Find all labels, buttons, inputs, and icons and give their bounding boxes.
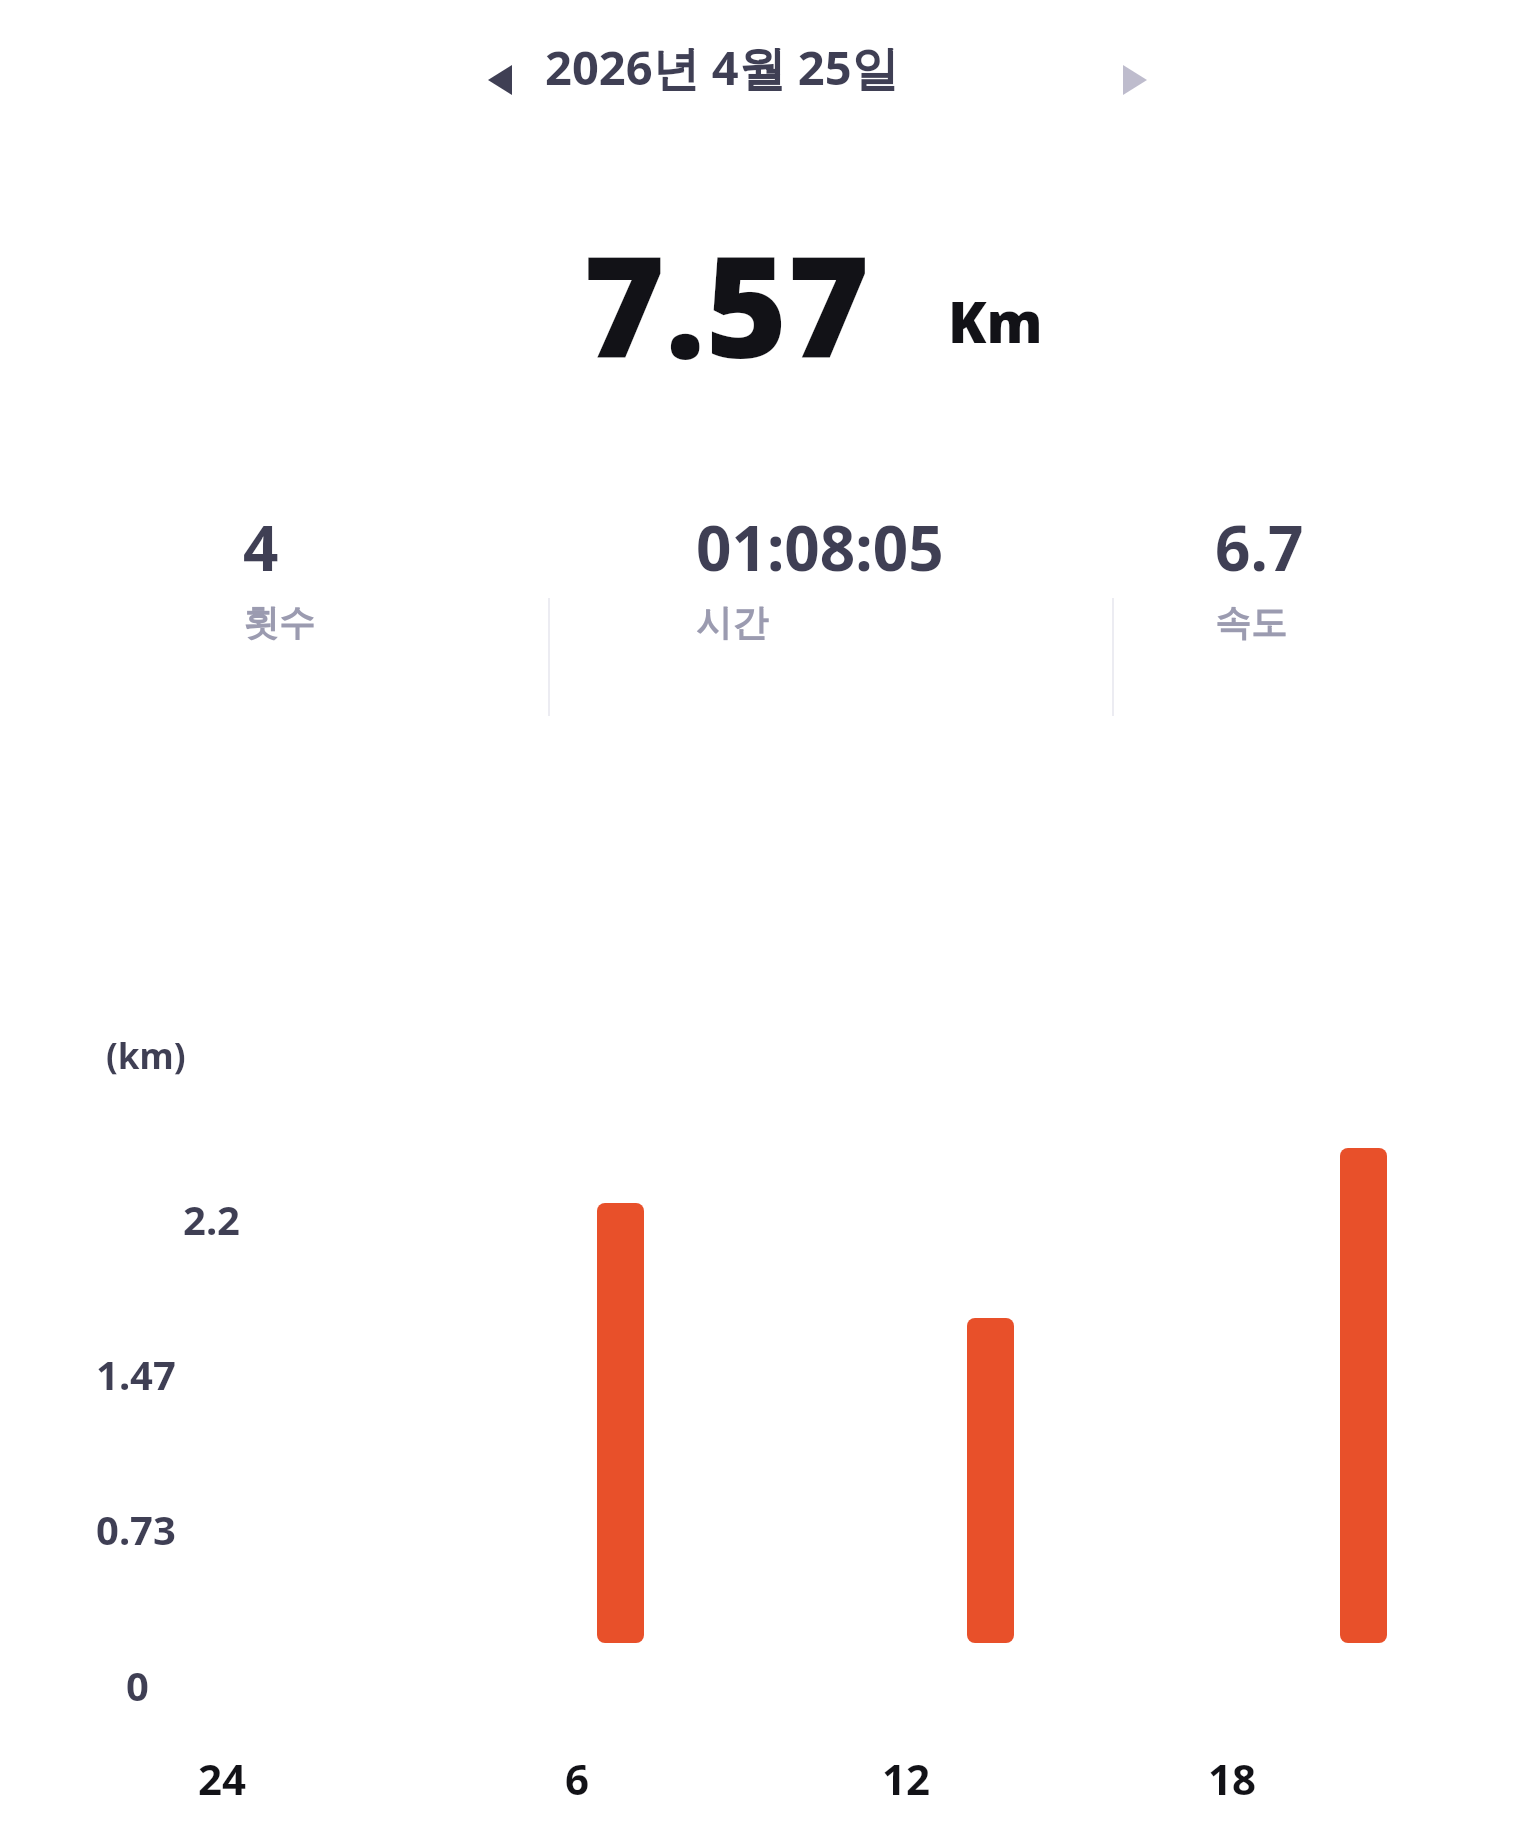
staticText: Km xyxy=(948,283,1043,359)
staticText: 1.47 xyxy=(96,1347,176,1401)
staticText: 횟수 xyxy=(243,600,315,645)
staticText: 시간 xyxy=(696,600,768,645)
staticText: (km) xyxy=(106,1032,186,1080)
staticText: 6 xyxy=(565,1750,590,1807)
button[interactable]: 01:08:05 xyxy=(696,505,944,589)
staticText: 24 xyxy=(198,1750,247,1807)
staticText: 18 xyxy=(1208,1750,1257,1807)
button[interactable]: 6.7 xyxy=(1215,505,1304,589)
button[interactable]: Previous day xyxy=(470,48,530,112)
staticText: 0.73 xyxy=(96,1502,176,1556)
staticText: 7.57 xyxy=(583,208,870,399)
staticText: 속도 xyxy=(1215,600,1287,645)
staticText: 01:08:05 xyxy=(696,505,944,589)
staticText: 0 xyxy=(126,1658,149,1712)
button[interactable]: 4 xyxy=(243,505,279,589)
staticText: 2026년 4월 25일 xyxy=(545,35,899,99)
button[interactable]: Next day xyxy=(1105,48,1165,112)
staticText: 6.7 xyxy=(1215,505,1304,589)
staticText: 2.2 xyxy=(183,1192,240,1246)
staticText: 4 xyxy=(243,505,279,589)
staticText: 12 xyxy=(882,1750,931,1807)
